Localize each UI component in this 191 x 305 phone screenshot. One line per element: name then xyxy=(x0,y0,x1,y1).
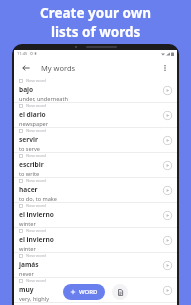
staticText: New word xyxy=(26,103,46,109)
button[interactable]: Play pronunciation xyxy=(160,108,174,122)
staticText: servir xyxy=(19,135,38,144)
button[interactable]: WORD xyxy=(63,284,105,300)
staticText: bajo xyxy=(19,85,34,94)
staticText: newspaper xyxy=(19,120,49,127)
staticText: New word xyxy=(26,178,46,184)
staticText: New word xyxy=(26,278,46,284)
button[interactable]: New word xyxy=(14,228,177,252)
staticText: to write xyxy=(19,170,40,177)
staticText: 11:45 xyxy=(17,51,28,56)
staticText: hacer xyxy=(19,185,38,194)
staticText: very, highly xyxy=(19,295,49,302)
staticText: WORD xyxy=(79,288,98,296)
button[interactable]: Play pronunciation xyxy=(160,183,174,197)
button[interactable]: Play pronunciation xyxy=(160,83,174,97)
button[interactable]: Play pronunciation xyxy=(160,283,174,297)
staticText: winter xyxy=(19,220,36,227)
button[interactable]: New word xyxy=(14,103,177,127)
staticText: New word xyxy=(26,153,46,159)
button[interactable]: New word xyxy=(14,253,177,277)
button[interactable]: Play pronunciation xyxy=(160,133,174,147)
staticText: to do, to make xyxy=(19,195,58,202)
staticText: under, underneath xyxy=(19,95,68,102)
staticText: My words xyxy=(41,63,76,73)
button[interactable]: More options xyxy=(158,61,172,75)
button[interactable]: New word xyxy=(14,178,177,202)
button[interactable]: Play pronunciation xyxy=(160,158,174,172)
staticText: el invierno xyxy=(19,235,54,244)
staticText: escribir xyxy=(19,160,44,169)
button[interactable]: New word xyxy=(14,278,177,302)
button[interactable]: Import list xyxy=(112,284,128,300)
staticText: New word xyxy=(26,78,46,84)
staticText: never xyxy=(19,270,34,277)
button[interactable]: New word xyxy=(14,203,177,227)
button[interactable]: New word xyxy=(14,153,177,177)
button[interactable]: Play pronunciation xyxy=(160,208,174,222)
staticText: New word xyxy=(26,203,46,209)
staticText: winter xyxy=(19,245,36,252)
staticText: el diario xyxy=(19,110,46,119)
staticText: el invierno xyxy=(19,210,54,219)
staticText: lists of words xyxy=(51,23,141,41)
staticText: jamás xyxy=(19,260,39,269)
staticText: muy xyxy=(19,285,34,294)
button[interactable]: Back xyxy=(19,61,33,75)
staticText: New word xyxy=(26,128,46,134)
staticText: New word xyxy=(26,228,46,234)
staticText: Create your own xyxy=(40,4,151,22)
button[interactable]: Play pronunciation xyxy=(160,258,174,272)
button[interactable]: New word xyxy=(14,78,177,102)
button[interactable]: New word xyxy=(14,128,177,152)
staticText: New word xyxy=(26,253,46,259)
button[interactable]: Play pronunciation xyxy=(160,233,174,247)
staticText: to serve xyxy=(19,145,40,152)
